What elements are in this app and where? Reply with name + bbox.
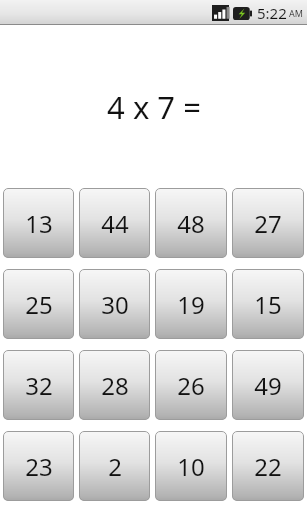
staticText: 44 [101, 207, 129, 240]
staticText: 30 [101, 288, 129, 321]
button[interactable]: 30 [79, 269, 150, 339]
staticText: 10 [177, 450, 205, 483]
other: Battery charging [233, 7, 252, 20]
button[interactable]: 28 [79, 350, 150, 420]
staticText: 25 [25, 288, 53, 321]
button[interactable]: 23 [3, 431, 74, 501]
staticText: AM [289, 7, 303, 19]
staticText: 15 [254, 288, 282, 321]
staticText: 2 [108, 450, 122, 483]
button[interactable]: 2 [79, 431, 150, 501]
staticText: 19 [177, 288, 205, 321]
button[interactable]: 13 [3, 188, 74, 258]
staticText: 22 [254, 450, 282, 483]
staticText: 28 [101, 369, 129, 402]
staticText: 48 [177, 207, 205, 240]
other: Signal strength [212, 5, 229, 21]
staticText: 32 [25, 369, 53, 402]
button[interactable]: 27 [232, 188, 304, 258]
staticText: 13 [25, 207, 53, 240]
button[interactable]: 44 [79, 188, 150, 258]
button[interactable]: 19 [155, 269, 227, 339]
button[interactable]: 49 [232, 350, 304, 420]
button[interactable]: 22 [232, 431, 304, 501]
staticText: 5:22 [257, 3, 287, 23]
button[interactable]: 48 [155, 188, 227, 258]
button[interactable]: 15 [232, 269, 304, 339]
staticText: 26 [177, 369, 205, 402]
button[interactable]: 10 [155, 431, 227, 501]
staticText: 27 [254, 207, 282, 240]
button[interactable]: 32 [3, 350, 74, 420]
staticText: 23 [25, 450, 53, 483]
staticText: 4 x 7 = [107, 86, 201, 128]
button[interactable]: 26 [155, 350, 227, 420]
staticText: 49 [254, 369, 282, 402]
button[interactable]: 25 [3, 269, 74, 339]
